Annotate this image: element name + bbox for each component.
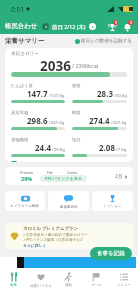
staticText: /327.4g: [110, 119, 127, 125]
button[interactable]: 運動: [54, 268, 82, 300]
button[interactable]: Previous day: [42, 23, 49, 30]
staticText: 脂質: [72, 83, 81, 88]
staticText: メニュー: [117, 283, 131, 287]
staticText: 12%: [44, 175, 56, 182]
staticText: 274.4: [89, 115, 110, 126]
staticText: Protein: [20, 170, 34, 175]
staticText: 147.7: [27, 88, 48, 99]
button[interactable]: 食事を記録: [90, 247, 132, 260]
staticText: 運動: [65, 283, 72, 287]
button[interactable]: PFCバランスを見る: [40, 175, 87, 182]
staticText: ✓広告非表示 ✓AIの紹介で限定カロリー: [23, 232, 88, 237]
button[interactable]: 食事: [0, 268, 27, 300]
staticText: AI食事相談: [60, 204, 78, 209]
staticText: たんぱく質: [11, 83, 33, 88]
staticText: 前日との数値を記録する: [81, 38, 133, 44]
staticText: 298.6: [27, 115, 48, 126]
staticText: 59%: [66, 175, 78, 182]
staticText: 24.4: [35, 142, 51, 153]
staticText: / 2396kcal: [72, 62, 99, 69]
staticText: 帳尻合わせ: [5, 22, 38, 30]
button[interactable]: 体重/バイタル: [27, 268, 54, 300]
staticText: /137.8g: [48, 92, 65, 98]
staticText: 本日カロリー: [11, 51, 39, 57]
button[interactable]: Trophy: [106, 20, 118, 32]
button[interactable]: AI食事相談: [48, 191, 89, 211]
staticText: 栄養サマリー: [5, 37, 45, 45]
button[interactable]: ゴール: [82, 268, 110, 300]
staticText: PFCバランスを見る: [45, 176, 83, 182]
staticText: 28.3: [97, 88, 113, 99]
staticText: 糖質: [72, 110, 81, 115]
button[interactable]: カロミル プレミアムプラン: [5, 223, 133, 249]
staticText: さらに詳しく: [23, 243, 47, 248]
staticText: 1: [130, 21, 132, 25]
button[interactable]: カメラロール解析: [5, 191, 45, 211]
staticText: 2月: [115, 173, 123, 180]
staticText: ミッション: [103, 204, 122, 209]
staticText: カロミル プレミアムプラン: [23, 225, 79, 231]
staticText: /7.5g: [115, 146, 127, 152]
staticText: Fat: [47, 170, 53, 175]
staticText: 食事を記録: [97, 250, 125, 257]
staticText: /19.0g: [51, 146, 65, 152]
staticText: ✓PFCバランス確認 ✓広告非表示など: [23, 237, 84, 242]
staticText: /50.6g: [113, 92, 127, 98]
staticText: 炭水化物: [11, 110, 29, 115]
staticText: 2036: [40, 57, 71, 71]
staticText: 食物繊維: [11, 137, 29, 142]
staticText: 体重/バイタル: [30, 283, 52, 288]
button[interactable]: 2月: [115, 173, 128, 180]
staticText: 29%: [21, 175, 33, 182]
staticText: 0:51: [11, 5, 24, 14]
button[interactable]: ミッション: [92, 191, 133, 211]
staticText: /347.4g: [48, 119, 65, 125]
staticText: 塩分: [72, 137, 81, 142]
staticText: Carbs: [67, 170, 78, 175]
button[interactable]: 前日との数値を記録する: [75, 38, 133, 44]
button[interactable]: Next day: [89, 23, 96, 30]
button[interactable]: メニュー: [110, 268, 138, 300]
staticText: 前日 2/12 (木): [52, 23, 86, 30]
staticText: 1: [115, 21, 117, 25]
staticText: ゴール: [91, 283, 102, 287]
button[interactable]: Notifications: [121, 20, 133, 32]
staticText: 食事: [10, 283, 17, 287]
staticText: カメラロール解析: [10, 204, 40, 209]
staticText: 2.08: [99, 142, 115, 153]
